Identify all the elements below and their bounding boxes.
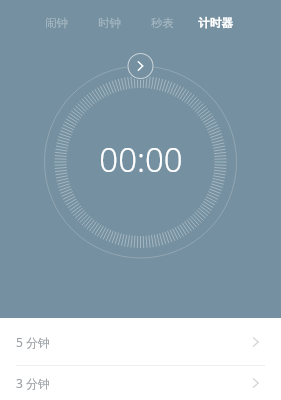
other: Open 3 分钟 [247, 374, 265, 392]
staticText: 00:00 [99, 137, 183, 182]
staticText: 时钟 [98, 16, 121, 30]
staticText: 秒表 [151, 16, 174, 30]
other: Open 5 分钟 [247, 333, 265, 351]
button[interactable]: 秒表 [136, 0, 189, 46]
button[interactable]: 闹钟 [30, 0, 83, 46]
staticText: 3 分钟 [16, 375, 50, 391]
button[interactable]: 3 分钟 [0, 366, 281, 400]
button[interactable]: 5 分钟 [0, 318, 281, 365]
staticText: 计时器 [198, 16, 233, 30]
staticText: 闹钟 [45, 16, 68, 30]
button[interactable]: 时钟 [83, 0, 136, 46]
button[interactable]: 计时器 [189, 0, 242, 46]
staticText: 5 分钟 [16, 334, 50, 350]
